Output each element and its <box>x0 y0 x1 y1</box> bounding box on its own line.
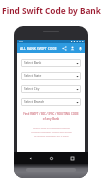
staticText: Select Bank <box>24 61 42 65</box>
staticText: ALL BANK SWIFT CODE <box>20 46 57 51</box>
button[interactable]: Home <box>46 153 56 163</box>
button[interactable]: Select Branch <box>21 98 81 106</box>
button[interactable]: Notifications <box>76 44 84 52</box>
staticText: Find Swift Code by Bank <box>2 5 101 16</box>
staticText: Select Branch <box>24 100 45 104</box>
button[interactable]: Select State <box>21 72 81 80</box>
staticText: Find SWIFT / BIC / IFSC / ROUTING CODE o… <box>23 112 79 120</box>
button[interactable]: Back <box>25 153 35 163</box>
button[interactable]: Account <box>68 44 76 52</box>
button[interactable]: Select City <box>21 85 81 93</box>
button[interactable]: Recent apps <box>67 153 77 163</box>
staticText: Select State <box>24 74 42 78</box>
button[interactable]: Select Bank <box>21 59 81 67</box>
staticText: SWIFT code is a standard format of Bank … <box>31 126 72 138</box>
button[interactable]: Share <box>60 44 68 52</box>
staticText: Select City <box>24 87 40 91</box>
